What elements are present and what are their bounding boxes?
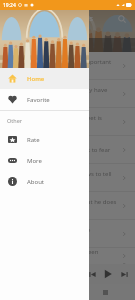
- staticText: More: [27, 157, 42, 165]
- staticText: About: [27, 178, 45, 186]
- button[interactable]: The beginning is the most important part…: [0, 52, 135, 79]
- button[interactable]: Be kind, for everyone you meet is fighti…: [0, 108, 135, 135]
- staticText: The beginning is the most important part…: [8, 58, 117, 74]
- button[interactable]: Good people do not need laws to tell the…: [0, 164, 135, 191]
- button[interactable]: Opinion is the medium between knowledge …: [0, 248, 135, 264]
- staticText: 19:24: [3, 2, 16, 9]
- staticText: Be kind, for everyone you meet is fighti…: [8, 114, 117, 130]
- staticText: Opinion is the medium between knowledge …: [8, 248, 117, 264]
- staticText: Courage is knowing what not to fear: [8, 146, 117, 154]
- button[interactable]: About: [0, 171, 89, 192]
- button[interactable]: Recents: [98, 285, 112, 299]
- button[interactable]: Play: [99, 265, 117, 283]
- staticText: Other: [7, 117, 23, 124]
- staticText: Rate: [27, 136, 40, 144]
- button[interactable]: Courage is knowing what not to fear: [0, 136, 135, 163]
- staticText: Favorite: [27, 96, 50, 104]
- button[interactable]: Home: [0, 68, 89, 89]
- button[interactable]: [0, 10, 135, 300]
- staticText: Home: [27, 75, 45, 83]
- staticText: 19:24: [3, 2, 16, 9]
- staticText: Philosophy Quotes: [30, 14, 115, 24]
- button[interactable]: Search: [115, 12, 129, 26]
- button[interactable]: The measure of a man is what he does wit…: [0, 192, 135, 219]
- staticText: Wise men speak because they have somethi…: [8, 86, 117, 102]
- staticText: The measure of a man is what he does wit…: [8, 198, 117, 214]
- button[interactable]: Next: [117, 267, 131, 281]
- button[interactable]: Favorite: [0, 89, 89, 110]
- staticText: Good people do not need laws to tell the…: [8, 170, 117, 186]
- staticText: PLATO'S WRITING: [6, 41, 59, 49]
- staticText: At the touch of love everyone becomes a …: [8, 226, 117, 242]
- button[interactable]: Rate: [0, 129, 89, 150]
- button[interactable]: Wise men speak because they have somethi…: [0, 80, 135, 107]
- button[interactable]: At the touch of love everyone becomes a …: [0, 220, 135, 247]
- button[interactable]: Previous: [85, 267, 99, 281]
- button[interactable]: More: [0, 150, 89, 171]
